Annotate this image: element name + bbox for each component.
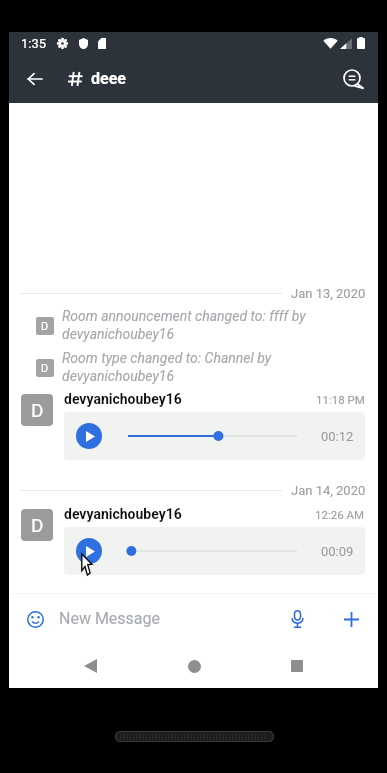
staticText: Room type changed to: Channel by — [62, 350, 272, 366]
button[interactable]: Back — [17, 61, 53, 97]
staticText: Room announcement changed to: ffff by — [62, 308, 306, 324]
staticText: deee — [91, 69, 126, 88]
staticText: D — [41, 320, 49, 333]
button[interactable]: Recents — [279, 648, 315, 684]
button[interactable]: Record audio — [282, 604, 312, 634]
staticText: devyanichoubey16 — [64, 391, 182, 407]
button[interactable]: Back — [72, 648, 108, 684]
staticText: Jan 14, 2020 — [291, 483, 366, 498]
button[interactable]: Threads — [335, 61, 371, 97]
button[interactable]: Play — [76, 538, 102, 564]
staticText: D — [31, 514, 44, 536]
staticText: D — [41, 362, 49, 375]
staticText: D — [31, 399, 44, 421]
staticText: 00:12 — [321, 429, 354, 444]
staticText: 00:09 — [321, 544, 354, 559]
button[interactable]: Add attachment — [336, 604, 366, 634]
staticText: devyanichoubey16 — [64, 506, 182, 522]
staticText: Jan 13, 2020 — [291, 286, 366, 301]
button[interactable]: Emoji — [21, 605, 49, 633]
button[interactable]: Play — [76, 423, 102, 449]
staticText: New Message — [59, 609, 161, 628]
staticText: devyanichoubey16 — [62, 368, 175, 384]
staticText: 12:26 AM — [315, 508, 365, 521]
button[interactable]: Home — [176, 648, 212, 684]
staticText: 11:18 PM — [316, 393, 365, 406]
staticText: 1:35 — [21, 36, 47, 51]
staticText: devyanichoubey16 — [62, 326, 175, 342]
